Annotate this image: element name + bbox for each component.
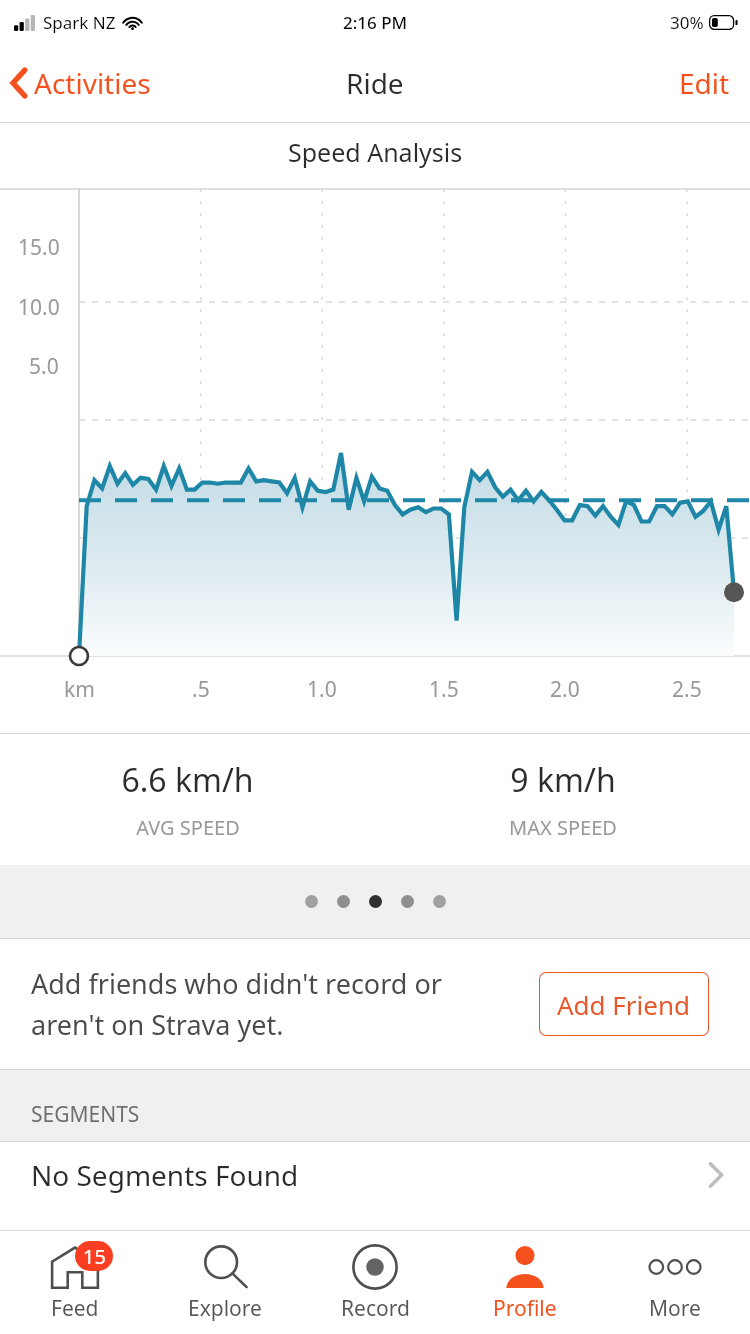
staticText: MAX SPEED [509,814,617,841]
staticText: 2.5 [672,675,702,704]
button[interactable]: More [600,1231,750,1334]
button[interactable]: Record [300,1231,450,1334]
staticText: Spark NZ [43,11,116,34]
staticText: 10.0 [18,293,60,322]
staticText: Explore [188,1294,262,1323]
button[interactable]: Add Friend [539,972,709,1036]
staticText: Add Friend [557,987,691,1022]
staticText: 2.0 [550,675,580,704]
staticText: Profile [493,1294,557,1323]
button[interactable]: No Segments Found [0,1142,750,1208]
staticText: 2:16 PM [343,11,408,34]
staticText: 15 [83,1243,106,1270]
staticText: 6.6 km/h [121,758,254,802]
staticText: 5.0 [29,352,59,381]
staticText: Speed Analysis [288,135,463,169]
staticText: 30% [670,11,704,34]
button[interactable]: 6.6 km/h [0,734,375,865]
staticText: Add friends who didn't record or [31,965,442,1002]
button[interactable]: Explore [150,1231,300,1334]
staticText: Feed [51,1294,99,1323]
button[interactable]: Profile [450,1231,600,1334]
staticText: Ride [346,64,404,102]
button[interactable]: 15 [0,1231,150,1334]
button[interactable]: Edit [659,54,750,112]
staticText: No Segments Found [31,1156,299,1194]
staticText: km [64,675,95,704]
staticText: 9 km/h [510,758,616,802]
button[interactable]: Activities [0,56,161,110]
staticText: .5 [192,675,210,704]
staticText: aren't on Strava yet. [31,1006,284,1043]
staticText: SEGMENTS [31,1100,140,1129]
staticText: Record [341,1294,410,1323]
staticText: 1.5 [429,675,459,704]
staticText: 15.0 [18,233,60,262]
staticText: AVG SPEED [136,814,240,841]
staticText: Edit [679,64,730,102]
staticText: Activities [34,64,151,102]
staticText: More [649,1294,701,1323]
button[interactable]: 9 km/h [375,734,750,865]
staticText: 1.0 [307,675,337,704]
